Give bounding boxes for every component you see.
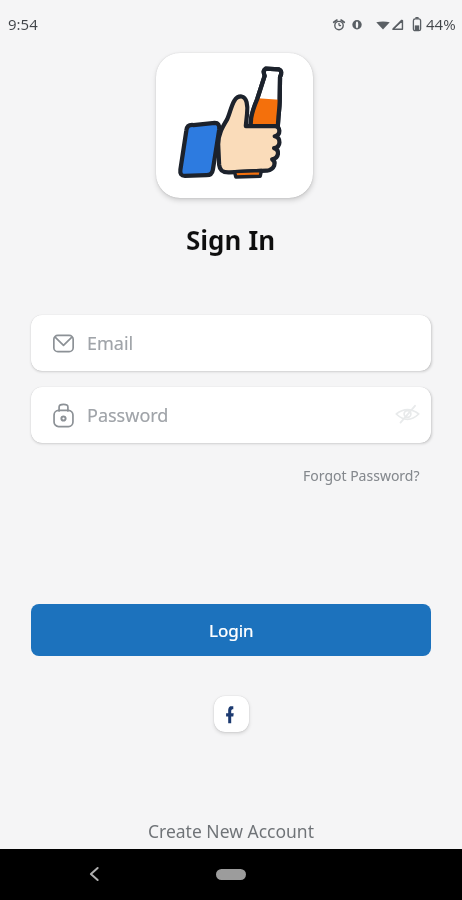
- button[interactable]: Password: [31, 387, 431, 443]
- staticText: Login: [209, 619, 254, 642]
- staticText: Email: [87, 331, 134, 356]
- button[interactable]: Login: [31, 604, 431, 656]
- staticText: 44%: [426, 14, 456, 34]
- button[interactable]: Create New Account: [140, 815, 323, 847]
- staticText: 9:54: [8, 14, 38, 34]
- button[interactable]: Back: [79, 859, 109, 889]
- button[interactable]: Sign in with Facebook: [214, 696, 249, 732]
- button[interactable]: Home: [205, 863, 257, 886]
- button[interactable]: Show password: [394, 402, 420, 428]
- button[interactable]: Email: [31, 315, 431, 371]
- staticText: Forgot Password?: [303, 466, 420, 485]
- staticText: Sign In: [186, 222, 276, 257]
- staticText: Create New Account: [148, 819, 315, 843]
- staticText: Password: [87, 403, 169, 428]
- button[interactable]: Forgot Password?: [299, 461, 424, 490]
